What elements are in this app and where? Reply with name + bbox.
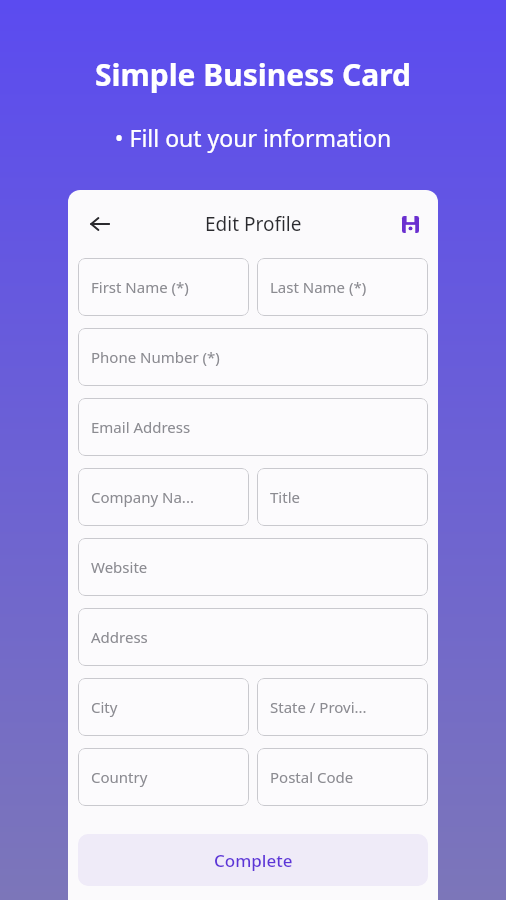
staticText: Address xyxy=(91,627,148,647)
staticText: Phone Number (*) xyxy=(91,347,220,367)
staticText: Title xyxy=(270,487,300,507)
button[interactable]: Complete xyxy=(78,834,428,886)
staticText: First Name (*) xyxy=(91,277,189,297)
button[interactable]: Save xyxy=(392,206,428,242)
button[interactable]: Title xyxy=(257,468,428,526)
button[interactable]: Back xyxy=(80,204,120,244)
staticText: Postal Code xyxy=(270,767,354,787)
button[interactable]: Postal Code xyxy=(257,748,428,806)
staticText: State / Provi... xyxy=(270,697,367,717)
button[interactable]: City xyxy=(78,678,249,736)
button[interactable]: Email Address xyxy=(78,398,428,456)
button[interactable]: Country xyxy=(78,748,249,806)
staticText: Edit Profile xyxy=(205,211,302,237)
staticText: Country xyxy=(91,767,148,787)
staticText: City xyxy=(91,697,118,717)
staticText: Simple Business Card xyxy=(0,54,506,95)
button[interactable]: Website xyxy=(78,538,428,596)
staticText: Website xyxy=(91,557,148,577)
staticText: Complete xyxy=(214,849,293,872)
staticText: Company Na... xyxy=(91,487,194,507)
button[interactable]: First Name (*) xyxy=(78,258,249,316)
button[interactable]: Last Name (*) xyxy=(257,258,428,316)
button[interactable]: Company Na... xyxy=(78,468,249,526)
staticText: • Fill out your information xyxy=(0,122,506,153)
button[interactable]: Address xyxy=(78,608,428,666)
button[interactable]: State / Provi... xyxy=(257,678,428,736)
staticText: Last Name (*) xyxy=(270,277,367,297)
staticText: Email Address xyxy=(91,417,191,437)
button[interactable]: Phone Number (*) xyxy=(78,328,428,386)
